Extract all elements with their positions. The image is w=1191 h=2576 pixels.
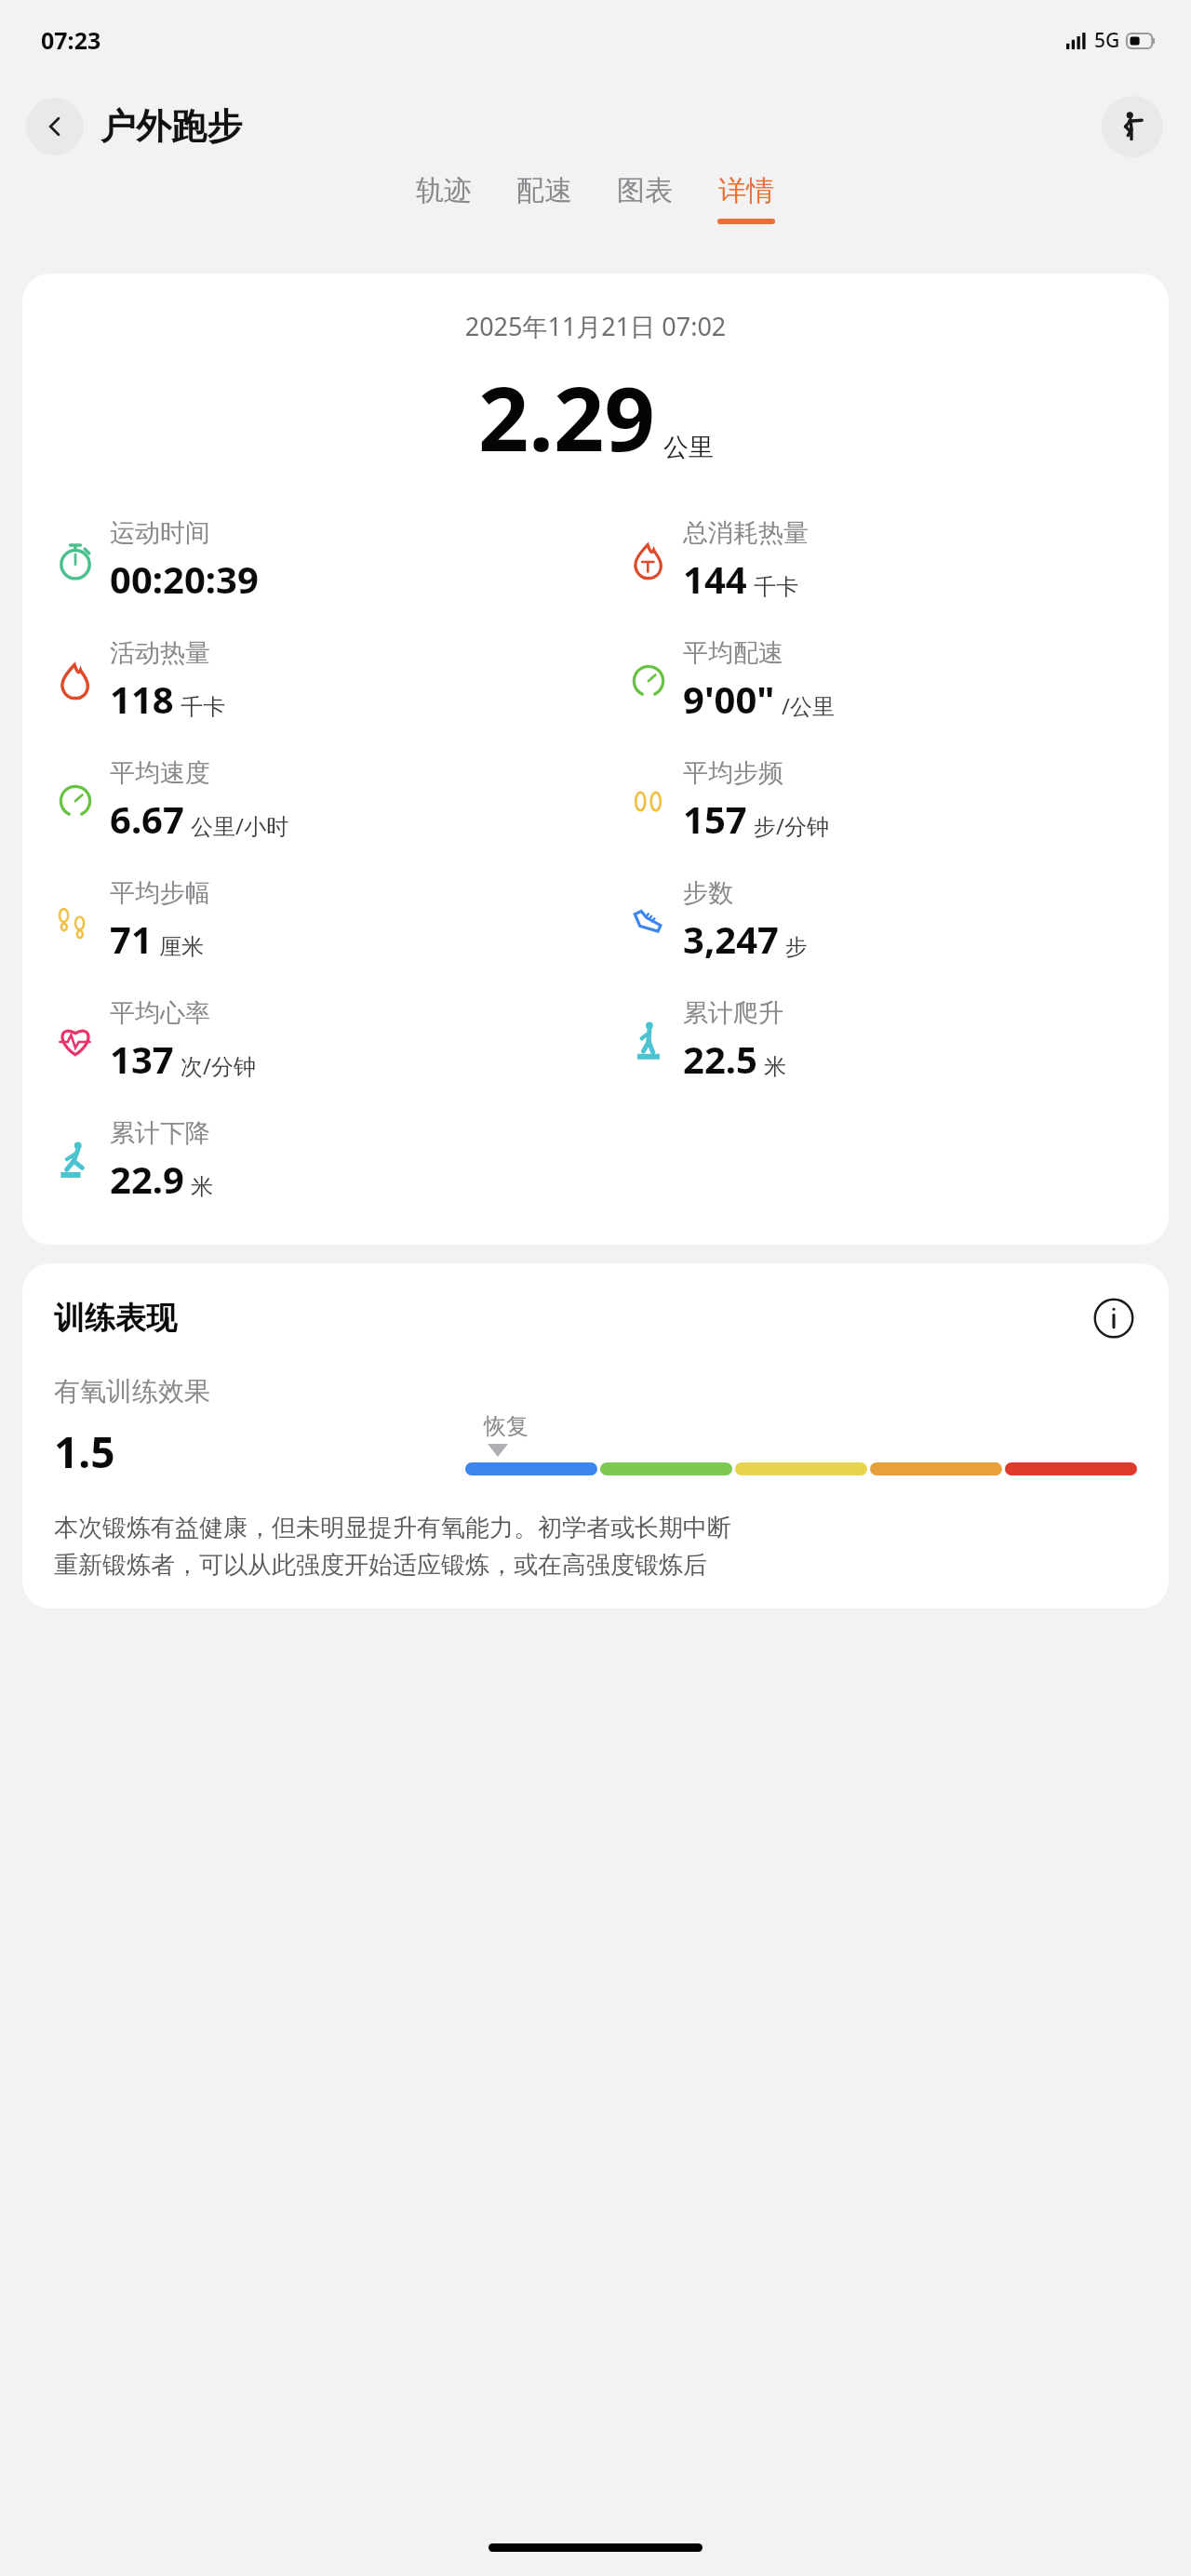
staticText: 总消耗热量 <box>683 517 809 549</box>
button[interactable]: Info <box>1091 1295 1137 1341</box>
staticText: 本次锻炼有益健康，但未明显提升有氧能力。初学者或长期中断 重新锻炼者，可以从此强… <box>54 1513 731 1581</box>
button[interactable]: 累计爬升 <box>627 997 1169 1084</box>
staticText: 米 <box>191 1173 213 1201</box>
button[interactable]: 总消耗热量 <box>627 517 1169 604</box>
button[interactable]: 累计下降 <box>54 1117 595 1204</box>
staticText: 9'00" <box>683 674 775 724</box>
staticText: 2.29 <box>478 356 655 476</box>
staticText: 户外跑步 <box>100 104 242 149</box>
staticText: 公里 <box>663 432 714 463</box>
button[interactable]: Back <box>26 98 84 155</box>
button[interactable]: 图表 <box>617 173 673 219</box>
button[interactable]: 平均配速 <box>627 637 1169 724</box>
button[interactable]: Workout type <box>1102 96 1163 157</box>
staticText: 5G <box>1094 27 1120 54</box>
staticText: 平均步频 <box>683 757 783 789</box>
staticText: 157 <box>683 794 747 844</box>
staticText: 步数 <box>683 877 733 909</box>
button[interactable]: 平均心率 <box>54 997 595 1084</box>
staticText: 千卡 <box>754 573 798 601</box>
staticText: 00:20:39 <box>110 554 259 604</box>
staticText: 3,247 <box>683 914 779 964</box>
staticText: 22.5 <box>683 1034 757 1084</box>
staticText: 次/分钟 <box>181 1050 256 1081</box>
button[interactable]: 平均步幅 <box>54 877 595 964</box>
staticText: 144 <box>683 554 747 604</box>
staticText: 厘米 <box>159 933 204 961</box>
staticText: 步/分钟 <box>754 810 829 841</box>
button[interactable]: 平均速度 <box>54 757 595 844</box>
button[interactable]: 活动热量 <box>54 637 595 724</box>
button[interactable]: 步数 <box>627 877 1169 964</box>
staticText: 有氧训练效果 <box>54 1375 210 1408</box>
staticText: 累计爬升 <box>683 997 783 1029</box>
staticText: 平均心率 <box>110 997 210 1029</box>
staticText: 平均配速 <box>683 637 783 669</box>
staticText: 07:23 <box>41 24 101 56</box>
staticText: 训练表现 <box>54 1299 177 1338</box>
staticText: 公里/小时 <box>191 810 288 841</box>
button[interactable]: 运动时间 <box>54 517 595 604</box>
button[interactable]: 配速 <box>516 173 572 219</box>
staticText: 图表 <box>617 173 673 208</box>
staticText: 活动热量 <box>110 637 210 669</box>
staticText: 71 <box>110 914 153 964</box>
button[interactable]: 平均步频 <box>627 757 1169 844</box>
staticText: 1.5 <box>54 1422 115 1481</box>
staticText: 平均速度 <box>110 757 210 789</box>
staticText: 米 <box>764 1053 786 1081</box>
staticText: 详情 <box>718 173 774 208</box>
staticText: 137 <box>110 1034 174 1084</box>
staticText: 恢复 <box>484 1412 529 1440</box>
staticText: 步 <box>785 933 808 961</box>
staticText: 22.9 <box>110 1154 184 1204</box>
staticText: /公里 <box>782 690 835 721</box>
staticText: 平均步幅 <box>110 877 210 909</box>
button[interactable]: 详情 <box>717 173 775 224</box>
staticText: 运动时间 <box>110 517 210 549</box>
staticText: 配速 <box>516 173 572 208</box>
staticText: 千卡 <box>181 693 225 721</box>
staticText: 2025年11月21日 07:02 <box>22 309 1169 343</box>
staticText: 118 <box>110 674 174 724</box>
staticText: 累计下降 <box>110 1117 210 1149</box>
staticText: 6.67 <box>110 794 184 844</box>
staticText: 轨迹 <box>416 173 472 208</box>
button[interactable]: 轨迹 <box>416 173 472 219</box>
